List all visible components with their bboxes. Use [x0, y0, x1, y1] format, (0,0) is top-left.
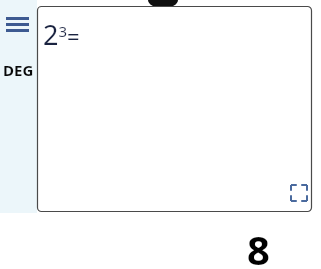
button[interactable]: 23= [37, 6, 312, 212]
staticText: 8 [247, 222, 270, 269]
staticText: DEG [3, 60, 34, 80]
button[interactable]: Menu [1, 11, 33, 37]
staticText: 23= [43, 16, 80, 53]
button[interactable]: DEG [0, 56, 37, 84]
button[interactable]: Expand display [287, 181, 311, 205]
